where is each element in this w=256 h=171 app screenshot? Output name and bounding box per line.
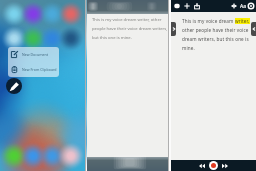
staticText: This is my voice dream writer, other <box>92 17 162 23</box>
button[interactable]: Rewind <box>198 162 206 170</box>
button[interactable]: Record <box>209 161 218 170</box>
button[interactable]: Fast forward <box>221 162 229 170</box>
button[interactable]: Compose <box>6 78 22 94</box>
button[interactable]: Add <box>183 2 191 10</box>
staticText: other people have their voice <box>182 27 249 33</box>
button[interactable]: Previous page <box>251 22 256 36</box>
button[interactable]: New Document <box>8 47 59 62</box>
button[interactable]: Navigate <box>230 2 238 10</box>
staticText: mine. <box>182 45 195 51</box>
staticText: people have their voice dream writers, <box>92 26 168 32</box>
staticText: New From Clipboard <box>22 67 57 72</box>
staticText: Aa <box>240 3 247 10</box>
button[interactable]: Library <box>173 2 181 10</box>
staticText: New Document <box>22 52 49 57</box>
staticText: but this one is mine. <box>92 35 132 41</box>
staticText: dream writers, but this one is <box>182 36 249 42</box>
staticText: This is my voice dream <box>182 18 235 24</box>
button[interactable]: Share <box>193 2 201 10</box>
button[interactable]: New From Clipboard <box>8 62 59 77</box>
button[interactable]: Settings <box>247 2 255 10</box>
button[interactable]: Next page <box>171 22 176 36</box>
button[interactable]: Aa <box>239 2 247 10</box>
staticText: writer, <box>235 18 250 24</box>
